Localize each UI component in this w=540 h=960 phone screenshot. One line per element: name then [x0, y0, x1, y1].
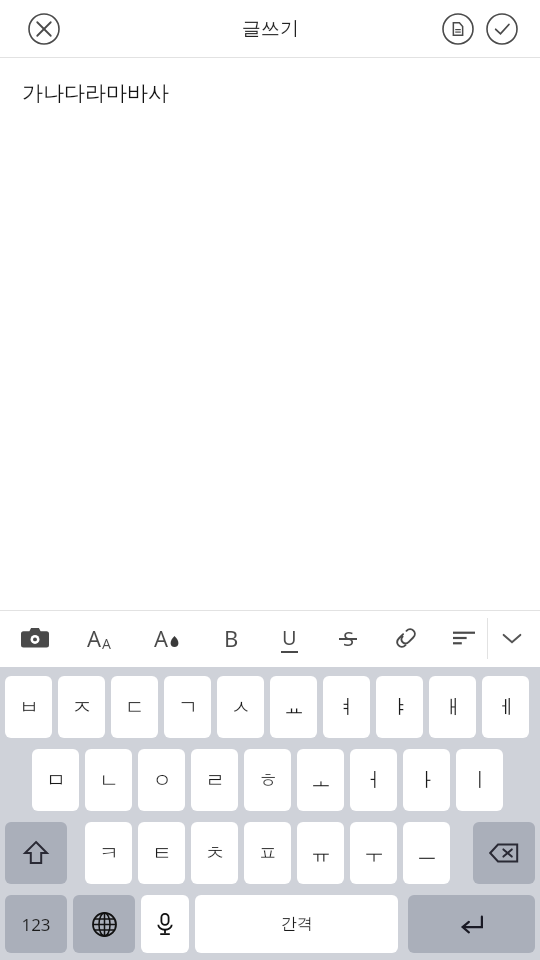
button[interactable]: Enter	[408, 895, 535, 953]
staticText: ㅅ	[231, 695, 251, 720]
button[interactable]: ㅜ	[350, 822, 397, 884]
staticText: ㅠ	[311, 841, 331, 866]
staticText: ㄹ	[205, 768, 225, 793]
staticText: ㅜ	[364, 841, 384, 866]
button[interactable]: ㅓ	[350, 749, 397, 811]
staticText: ㅐ	[443, 695, 463, 720]
staticText: ㅡ	[417, 841, 437, 866]
button[interactable]: ㄷ	[111, 676, 158, 738]
button[interactable]: Bold	[207, 614, 255, 662]
button[interactable]: ㅈ	[58, 676, 105, 738]
button[interactable]: Align	[440, 614, 488, 662]
staticText: S	[343, 625, 354, 652]
staticText: ㅈ	[72, 695, 92, 720]
staticText: ㅎ	[258, 768, 278, 793]
button[interactable]: ㅔ	[482, 676, 529, 738]
button[interactable]: Link	[382, 614, 430, 662]
staticText: ㅊ	[205, 841, 225, 866]
button[interactable]: ㅅ	[217, 676, 264, 738]
button[interactable]: Font size	[75, 614, 123, 662]
button[interactable]: 123	[5, 895, 67, 953]
button[interactable]: ㅎ	[244, 749, 291, 811]
staticText: A	[102, 634, 111, 653]
button[interactable]: ㄹ	[191, 749, 238, 811]
staticText: ㄷ	[125, 695, 145, 720]
button[interactable]: ㅐ	[429, 676, 476, 738]
button[interactable]: Underline	[265, 614, 313, 662]
button[interactable]: ㅏ	[403, 749, 450, 811]
staticText: ㅔ	[496, 695, 516, 720]
staticText: ㅇ	[152, 768, 172, 793]
staticText: 123	[21, 913, 51, 936]
staticText: ㅂ	[19, 695, 39, 720]
staticText: 가나다라마바사	[22, 80, 169, 106]
button[interactable]: ㅕ	[323, 676, 370, 738]
staticText: ㅗ	[311, 768, 331, 793]
staticText: ㅓ	[364, 768, 384, 793]
staticText: B	[224, 623, 239, 653]
button[interactable]: ㅊ	[191, 822, 238, 884]
button[interactable]: ㅍ	[244, 822, 291, 884]
staticText: ㄱ	[178, 695, 198, 720]
staticText: 글쓰기	[242, 17, 299, 41]
button[interactable]: Font color	[143, 614, 191, 662]
button[interactable]: Backspace	[473, 822, 535, 884]
button[interactable]: Language	[73, 895, 135, 953]
button[interactable]: ㅣ	[456, 749, 503, 811]
button[interactable]: ㅂ	[5, 676, 52, 738]
button[interactable]: ㅛ	[270, 676, 317, 738]
staticText: 간격	[281, 914, 313, 934]
button[interactable]: Shift	[5, 822, 67, 884]
staticText: ㅣ	[470, 768, 490, 793]
staticText: ㅌ	[152, 841, 172, 866]
button[interactable]: Done	[480, 7, 524, 51]
button[interactable]: ㄴ	[85, 749, 132, 811]
button[interactable]: ㅇ	[138, 749, 185, 811]
staticText: ㅕ	[337, 695, 357, 720]
button[interactable]: ㅁ	[32, 749, 79, 811]
button[interactable]: Voice input	[141, 895, 189, 953]
button[interactable]: ㅠ	[297, 822, 344, 884]
staticText: ㅛ	[284, 695, 304, 720]
button[interactable]: ㅗ	[297, 749, 344, 811]
staticText: ㅋ	[99, 841, 119, 866]
staticText: A	[87, 623, 102, 653]
button[interactable]: Close	[22, 7, 66, 51]
staticText: ㄴ	[99, 768, 119, 793]
button[interactable]: ㄱ	[164, 676, 211, 738]
button[interactable]: Strikethrough	[324, 614, 372, 662]
staticText: ㅑ	[390, 695, 410, 720]
button[interactable]: ㅋ	[85, 822, 132, 884]
staticText: U	[282, 624, 297, 651]
button[interactable]: Camera	[11, 614, 59, 662]
staticText: ㅍ	[258, 841, 278, 866]
staticText: ㅏ	[417, 768, 437, 793]
button[interactable]: Collapse	[488, 614, 536, 662]
button[interactable]: ㅡ	[403, 822, 450, 884]
button[interactable]: Draft	[436, 7, 480, 51]
staticText: ㅁ	[46, 768, 66, 793]
staticText: A	[154, 623, 169, 653]
button[interactable]: ㅌ	[138, 822, 185, 884]
button[interactable]: ㅑ	[376, 676, 423, 738]
button[interactable]: 간격	[195, 895, 398, 953]
